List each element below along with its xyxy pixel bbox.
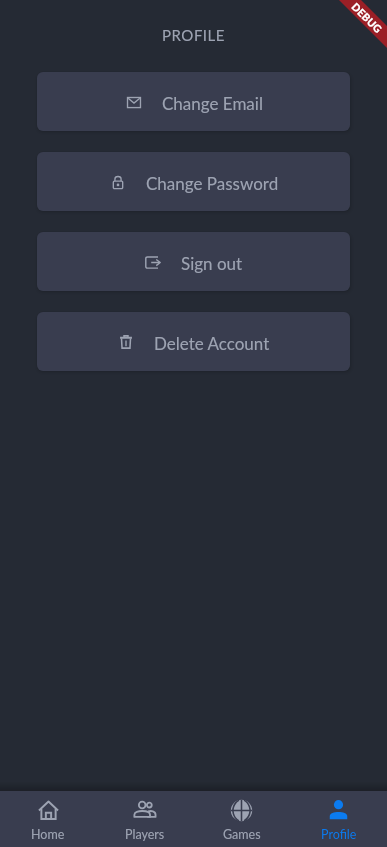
button[interactable]: Change Email [37,72,350,131]
button[interactable]: Games [193,796,290,842]
staticText: Sign out [181,253,243,273]
button[interactable]: Sign out [37,232,350,291]
staticText: Change Email [162,93,263,113]
staticText: Players [125,827,165,842]
button[interactable]: Home [0,796,96,842]
staticText: PROFILE [0,26,387,44]
button[interactable]: Delete Account [37,312,350,371]
staticText: DEBUG [349,0,385,36]
staticText: Delete Account [154,333,270,353]
button[interactable]: Players [96,796,193,842]
staticText: Home [31,827,65,842]
staticText: Change Password [146,173,279,193]
button[interactable]: Profile [290,796,387,842]
button[interactable]: Change Password [37,152,350,211]
staticText: Games [223,827,261,842]
staticText: Profile [321,827,357,842]
